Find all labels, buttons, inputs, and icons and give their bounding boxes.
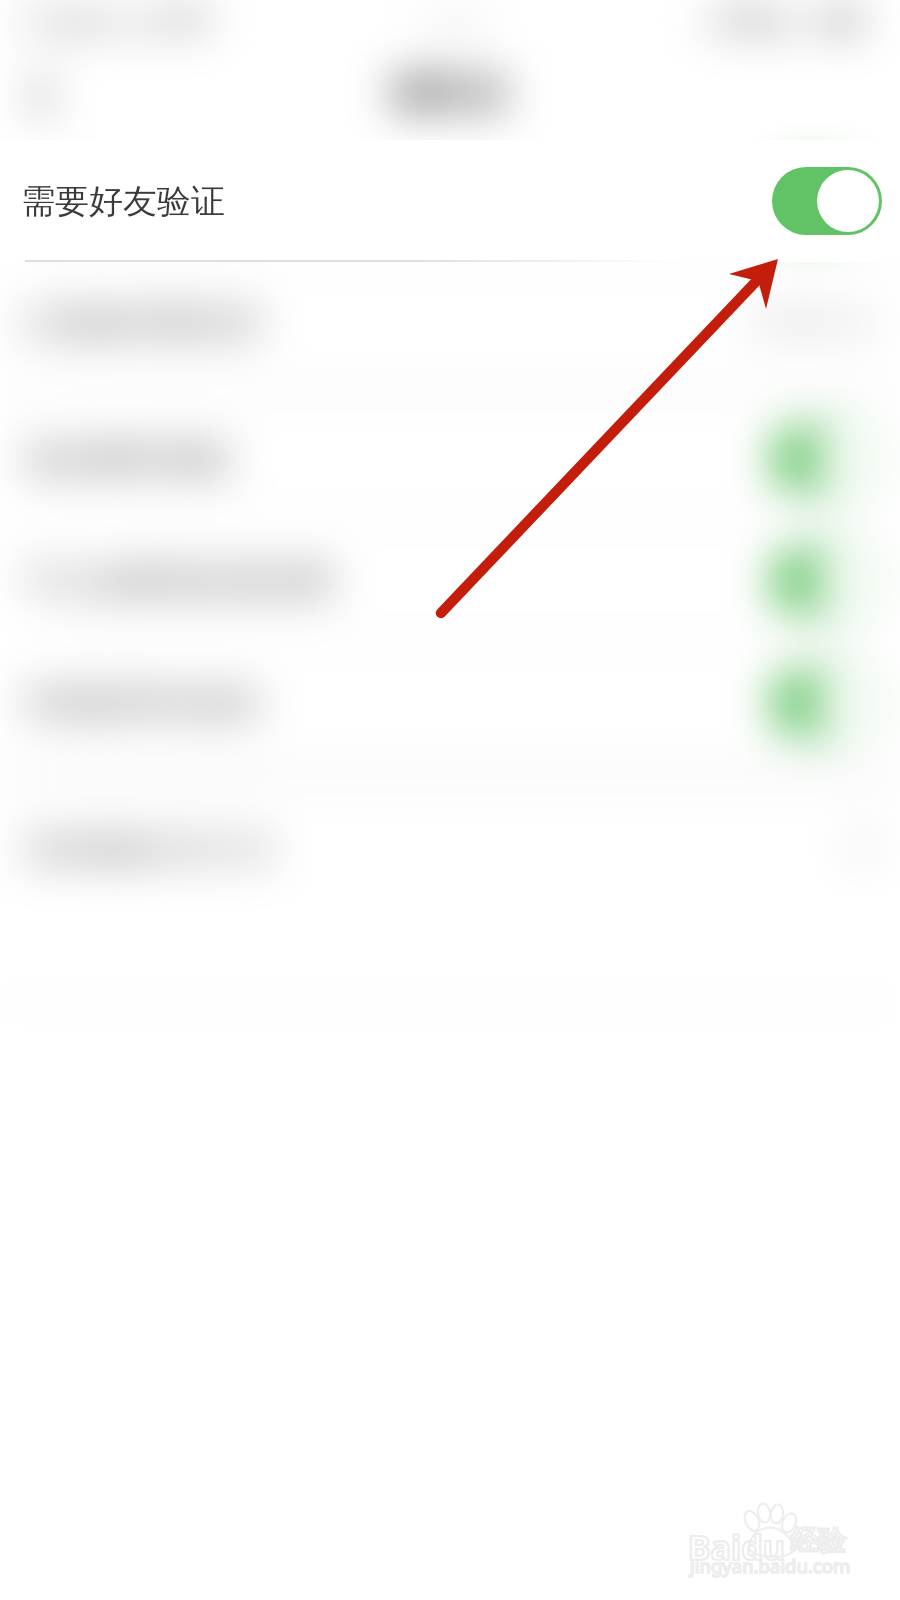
- button[interactable]: 不让他看我的朋友圈: [0, 520, 900, 642]
- staticText: 向我推荐通讯录: [25, 302, 263, 345]
- button[interactable]: Toggle switch: [770, 167, 880, 235]
- staticText: 需要好友验证: [25, 180, 229, 223]
- button[interactable]: 需要好友验证: [0, 140, 900, 262]
- staticText: 将我推荐给朋友: [25, 682, 263, 725]
- staticText: 需要好友验证: [21, 180, 225, 223]
- staticText: 经验: [791, 1524, 845, 1558]
- button[interactable]: Toggle switch: [770, 547, 880, 615]
- staticText: 84%: [756, 6, 808, 41]
- staticText: jingyan.baidu.com: [690, 1553, 851, 1578]
- button[interactable]: 添加我的方式 式: [0, 787, 900, 909]
- staticText: 已开启: [750, 304, 840, 342]
- staticText: 隐私设: [393, 69, 507, 117]
- button[interactable]: Toggle switch: [772, 167, 882, 235]
- button[interactable]: 朋友圈和视频: [0, 398, 900, 520]
- button[interactable]: Toggle switch: [770, 669, 880, 737]
- staticText: 朋友圈和视频: [25, 438, 229, 481]
- button[interactable]: Toggle switch: [770, 425, 880, 493]
- staticText: Baidu: [688, 1524, 785, 1570]
- staticText: 不让他看我的朋友圈: [25, 560, 331, 603]
- button[interactable]: 向我推荐通讯录: [0, 262, 900, 384]
- button[interactable]: 需要好友验证: [0, 140, 900, 262]
- staticText: 添加我的方式 式: [25, 825, 272, 871]
- button[interactable]: 将我推荐给朋友: [0, 642, 900, 764]
